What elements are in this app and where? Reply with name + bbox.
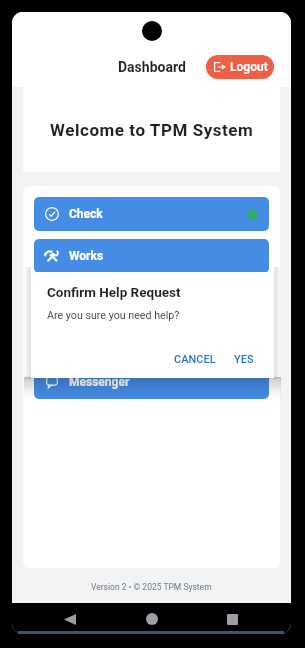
staticText: Works	[69, 249, 104, 263]
staticText: Reports	[69, 291, 112, 305]
button[interactable]: YES	[231, 349, 257, 370]
staticText: YES	[234, 353, 254, 366]
staticText: Welcome to TPM System	[50, 120, 254, 140]
button[interactable]: Reports	[34, 281, 269, 315]
staticText: Check	[69, 207, 103, 221]
button[interactable]: Back	[59, 608, 81, 630]
button[interactable]: Check	[34, 197, 269, 231]
staticText: Messenger	[69, 375, 130, 389]
button[interactable]: Tasks	[34, 323, 269, 357]
button[interactable]: Logout	[206, 55, 274, 79]
staticText: Logout	[230, 60, 268, 74]
button[interactable]: Works	[34, 239, 269, 273]
staticText: Confirm Help Request	[47, 284, 181, 300]
staticText: Are you sure you need help?	[47, 309, 180, 322]
button[interactable]: Messenger	[34, 365, 269, 399]
button[interactable]: Recents	[221, 608, 243, 630]
staticText: Version 2 • © 2025 TPM System	[91, 582, 212, 592]
staticText: Dashboard	[118, 59, 186, 75]
staticText: CANCEL	[174, 353, 216, 366]
button[interactable]: Home	[141, 608, 163, 630]
button[interactable]: CANCEL	[171, 349, 219, 370]
